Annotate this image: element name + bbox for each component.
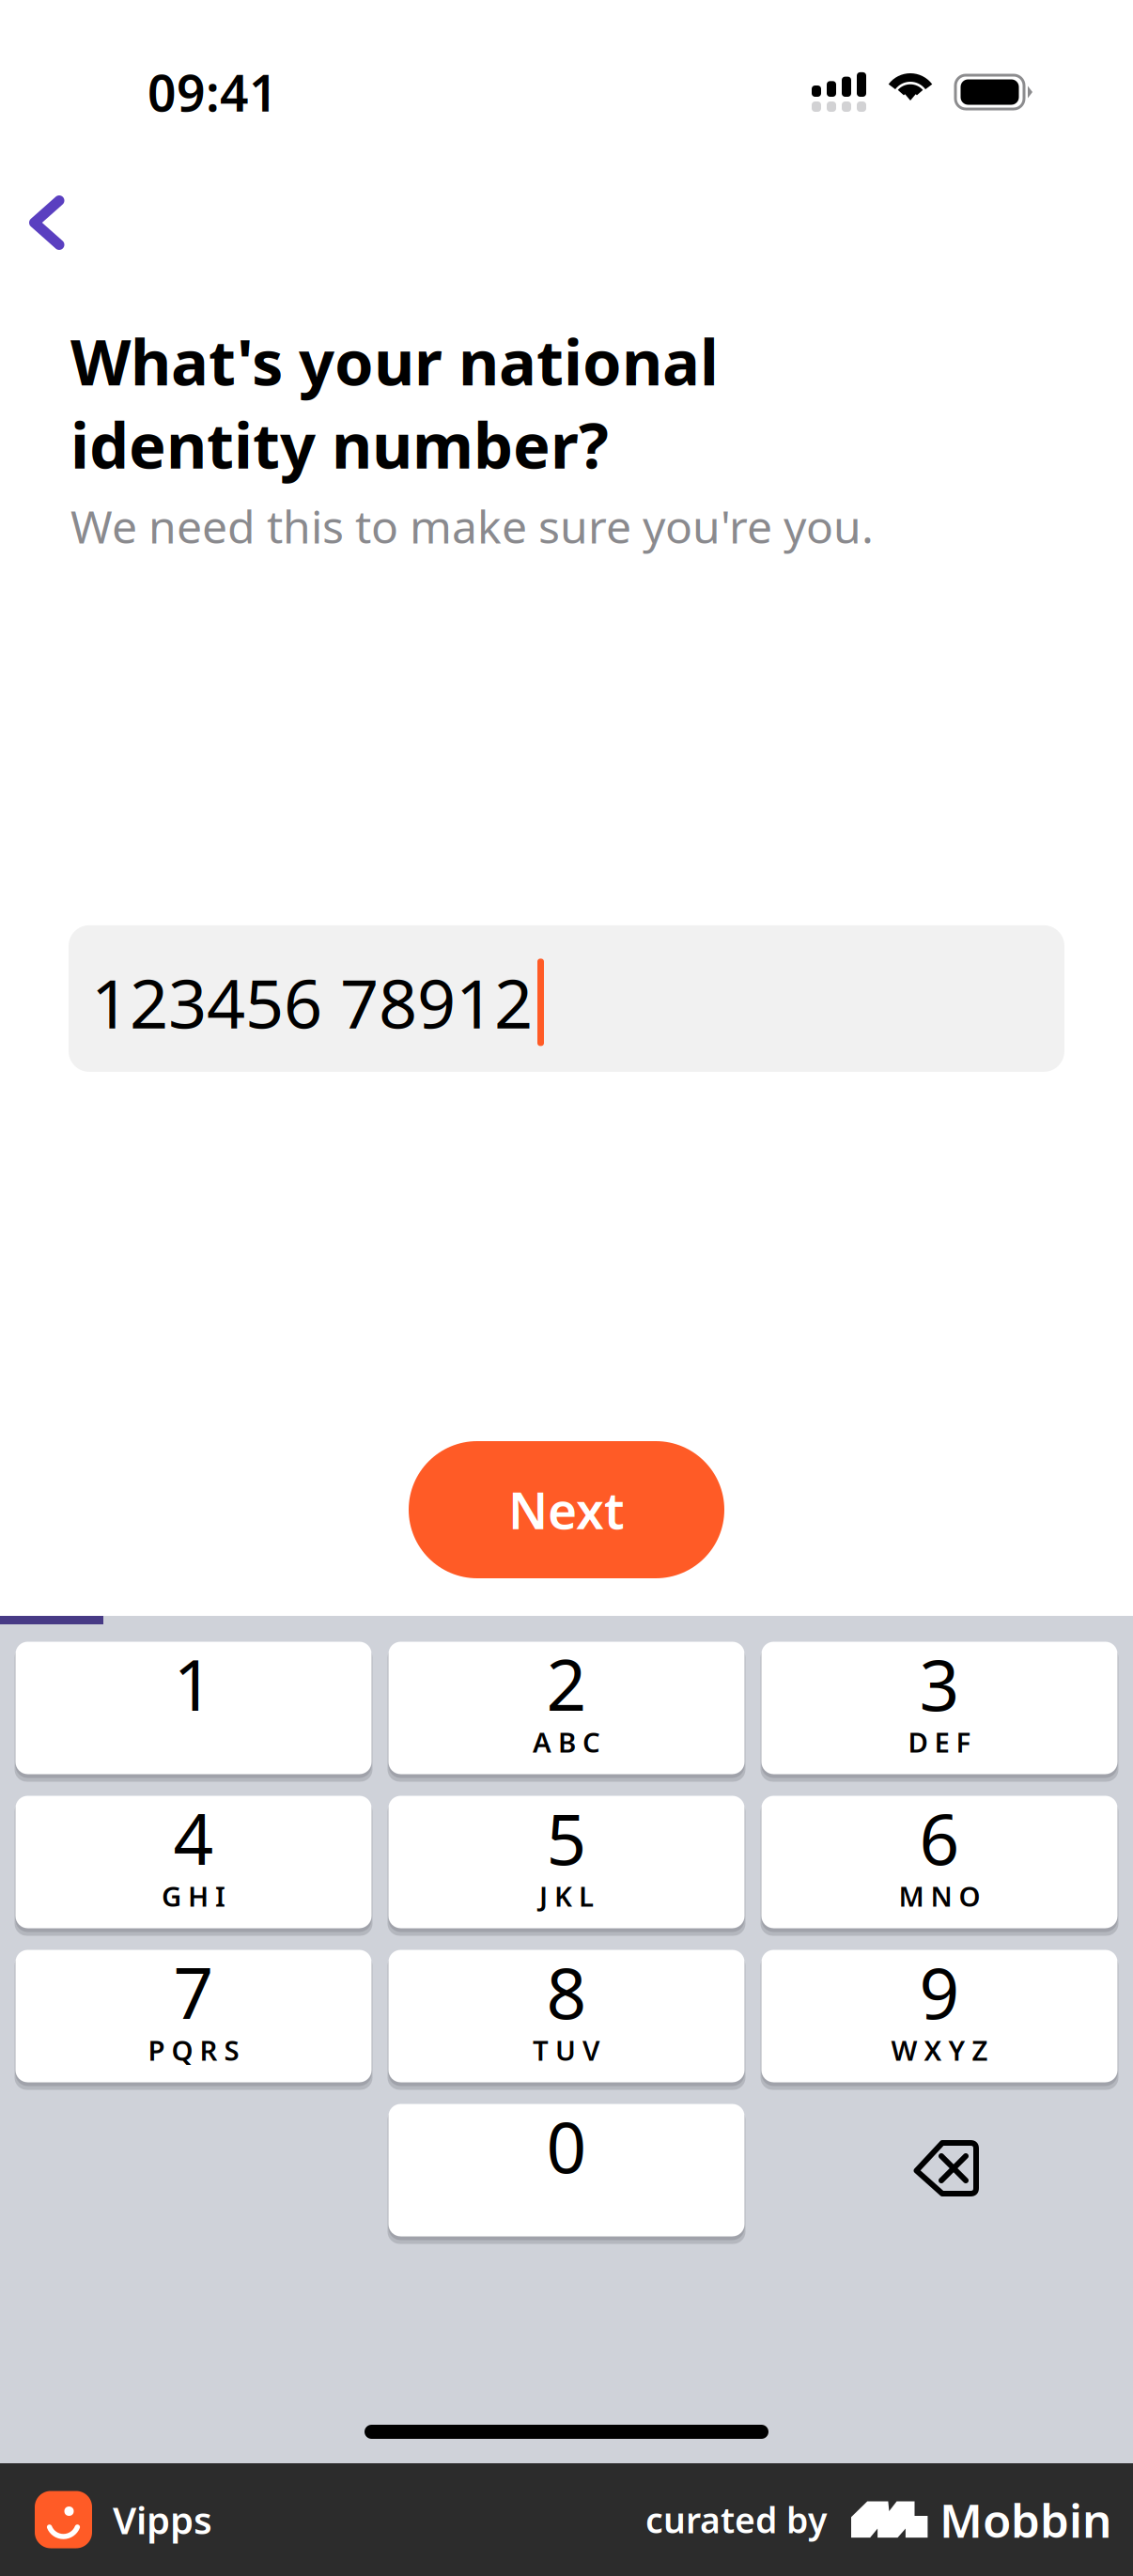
- button[interactable]: Back: [0, 185, 97, 292]
- staticText: GHI: [162, 1878, 225, 1914]
- staticText: identity number?: [70, 403, 609, 486]
- staticText: 7: [173, 1945, 214, 2038]
- staticText: 4: [173, 1791, 214, 1884]
- staticText: ABC: [533, 1724, 600, 1760]
- staticText: Vipps: [113, 2495, 212, 2545]
- button[interactable]: Delete: [761, 2103, 1117, 2241]
- staticText: JKL: [539, 1878, 594, 1914]
- staticText: DEF: [908, 1724, 971, 1760]
- staticText: 2: [546, 1637, 587, 1730]
- staticText: 0: [546, 2099, 587, 2192]
- button[interactable]: 5: [388, 1794, 745, 1933]
- staticText: 123456 78912: [91, 957, 533, 1047]
- button[interactable]: 7: [16, 1948, 372, 2087]
- staticText: What's your national: [70, 319, 719, 403]
- button[interactable]: 6: [761, 1794, 1117, 1933]
- staticText: 1: [173, 1637, 214, 1730]
- staticText: 9: [919, 1945, 960, 2038]
- staticText: MNO: [899, 1878, 980, 1914]
- button[interactable]: 3: [761, 1640, 1117, 1779]
- button[interactable]: 0: [388, 2103, 745, 2242]
- staticText: We need this to make sure you're you.: [70, 496, 874, 556]
- staticText: 5: [546, 1791, 587, 1884]
- staticText: 3: [919, 1637, 960, 1730]
- staticText: WXYZ: [891, 2032, 988, 2068]
- staticText: 6: [919, 1791, 960, 1884]
- button[interactable]: 2: [388, 1640, 745, 1779]
- staticText: PQRS: [148, 2032, 239, 2068]
- button[interactable]: 9: [761, 1948, 1117, 2087]
- button[interactable]: 1: [16, 1640, 372, 1779]
- staticText: TUV: [533, 2032, 600, 2068]
- button[interactable]: 8: [388, 1948, 745, 2087]
- staticText: Mobbin: [939, 2489, 1111, 2550]
- staticText: Next: [508, 1476, 625, 1543]
- button[interactable]: Next: [409, 1441, 724, 1578]
- staticText: 09:41: [147, 59, 278, 125]
- button[interactable]: 4: [16, 1794, 372, 1933]
- staticText: 8: [546, 1945, 587, 2038]
- staticText: curated by: [645, 2496, 827, 2543]
